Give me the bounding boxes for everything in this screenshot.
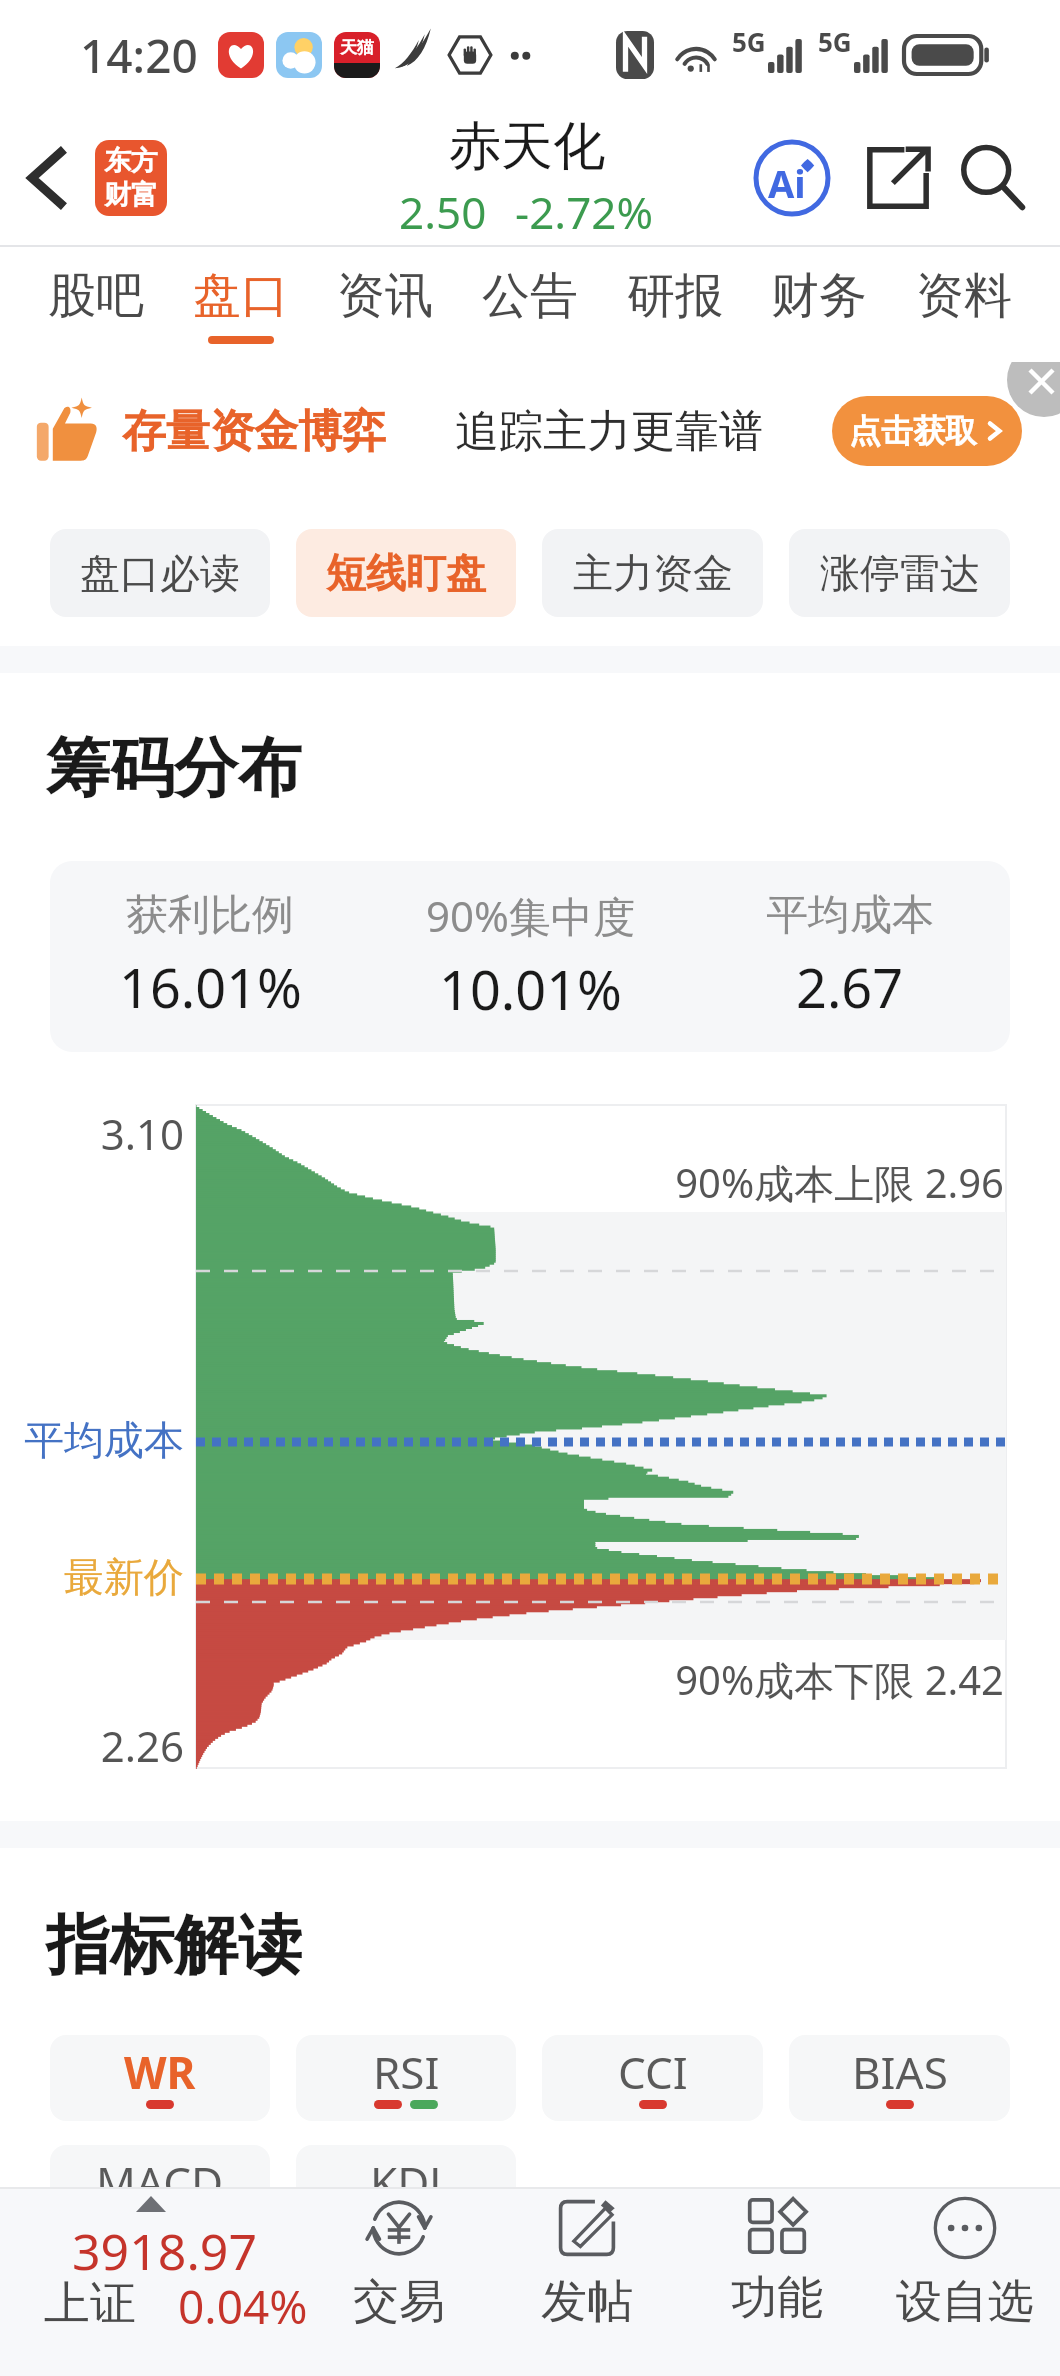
staticText: 获利比例 bbox=[126, 889, 294, 942]
staticText: 设自选 bbox=[896, 2273, 1034, 2331]
staticText: 90%成本上限 2.96 bbox=[0, 1155, 1004, 1210]
staticText: 赤天化 bbox=[449, 114, 605, 180]
button[interactable]: CCI bbox=[542, 2035, 763, 2121]
staticText: 公告 bbox=[482, 266, 578, 326]
staticText: BIAS bbox=[852, 2042, 948, 2102]
staticText: 2.67 bbox=[796, 950, 904, 1024]
button[interactable]: 交易 bbox=[309, 2195, 489, 2355]
staticText: Ai bbox=[768, 157, 806, 209]
button[interactable]: 设自选 bbox=[875, 2195, 1055, 2355]
staticText: 盘口必读 bbox=[80, 548, 240, 598]
staticText: 交易 bbox=[353, 2273, 445, 2331]
button[interactable]: 盘口必读 bbox=[50, 529, 270, 617]
button[interactable]: 资料 bbox=[916, 247, 1012, 362]
staticText: MACD bbox=[96, 2152, 224, 2212]
staticText: 5G bbox=[818, 24, 852, 59]
button[interactable]: 发帖 bbox=[497, 2195, 677, 2355]
staticText: 涨停雷达 bbox=[820, 548, 980, 598]
staticText: 主力资金 bbox=[573, 548, 733, 598]
staticText: 东方 bbox=[104, 144, 158, 178]
button[interactable]: 财务 bbox=[771, 247, 867, 362]
staticText: KDJ bbox=[370, 2152, 442, 2212]
button[interactable]: Close ad bbox=[1007, 362, 1060, 418]
staticText: 3918.97 bbox=[72, 2217, 257, 2285]
staticText: RSI bbox=[373, 2042, 440, 2102]
staticText: 平均成本 bbox=[766, 889, 934, 942]
staticText: -2.72% bbox=[515, 182, 654, 242]
button[interactable]: BIAS bbox=[789, 2035, 1010, 2121]
staticText: 财富 bbox=[104, 178, 158, 212]
staticText: 发帖 bbox=[541, 2273, 633, 2331]
button[interactable]: 主力资金 bbox=[542, 529, 763, 617]
staticText: 天猫 bbox=[340, 37, 374, 58]
button[interactable]: AI assistant bbox=[750, 136, 834, 220]
staticText: 功能 bbox=[731, 2269, 823, 2327]
button[interactable]: 涨停雷达 bbox=[789, 529, 1010, 617]
staticText: 追踪主力更靠谱 bbox=[455, 404, 763, 459]
button[interactable]: RSI bbox=[296, 2035, 516, 2121]
staticText: 盘口 bbox=[193, 266, 289, 326]
button[interactable]: Search bbox=[948, 136, 1038, 220]
staticText: 5G bbox=[732, 24, 766, 59]
button[interactable]: 短线盯盘 bbox=[296, 529, 516, 617]
staticText: WR bbox=[124, 2042, 196, 2102]
button[interactable]: 资讯 bbox=[337, 247, 433, 362]
button[interactable]: 点击获取 bbox=[832, 396, 1022, 466]
staticText: 股吧 bbox=[48, 266, 144, 326]
staticText: 存量资金博弈 bbox=[122, 404, 386, 459]
button[interactable]: 功能 bbox=[687, 2195, 867, 2355]
staticText: 短线盯盘 bbox=[326, 548, 486, 598]
button[interactable]: MACD bbox=[50, 2145, 270, 2231]
button[interactable]: WR bbox=[50, 2035, 270, 2121]
staticText: 10.01% bbox=[439, 952, 622, 1026]
button[interactable]: 研报 bbox=[627, 247, 723, 362]
staticText: 2.26 bbox=[0, 1717, 184, 1774]
button[interactable]: East Money bbox=[95, 140, 167, 216]
staticText: 90%集中度 bbox=[426, 887, 635, 944]
staticText: 点击获取 bbox=[849, 411, 977, 451]
staticText: 2.50 bbox=[399, 182, 487, 242]
staticText: 16.01% bbox=[119, 950, 302, 1024]
staticText: 90%成本下限 2.42 bbox=[0, 1652, 1004, 1707]
staticText: 资料 bbox=[916, 266, 1012, 326]
button[interactable]: Back bbox=[12, 142, 84, 214]
staticText: 最新价 bbox=[0, 1552, 184, 1602]
button[interactable]: 3918.97 bbox=[0, 2207, 310, 2337]
staticText: CCI bbox=[618, 2042, 688, 2102]
staticText: 14:20 bbox=[80, 24, 198, 87]
staticText: 财务 bbox=[771, 266, 867, 326]
button[interactable]: 公告 bbox=[482, 247, 578, 362]
staticText: 筹码分布 bbox=[46, 728, 302, 809]
button[interactable]: Share bbox=[856, 136, 940, 220]
button[interactable]: 盘口 bbox=[193, 247, 289, 362]
staticText: 资讯 bbox=[337, 266, 433, 326]
staticText: 上证 bbox=[44, 2275, 136, 2333]
button[interactable]: KDJ bbox=[296, 2145, 516, 2231]
staticText: 指标解读 bbox=[46, 1905, 302, 1986]
staticText: 3.10 bbox=[0, 1105, 184, 1162]
staticText: 0.04% bbox=[178, 2275, 308, 2338]
button[interactable]: 股吧 bbox=[48, 247, 144, 362]
staticText: 研报 bbox=[627, 266, 723, 326]
staticText: 平均成本 bbox=[0, 1415, 184, 1465]
